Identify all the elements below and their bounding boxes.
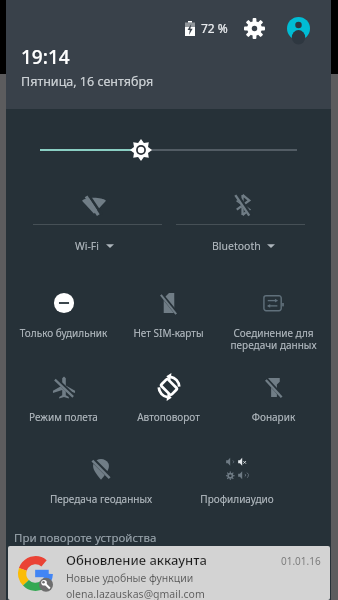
staticText: 72 % xyxy=(201,20,228,36)
button[interactable]: Передача геоданных xyxy=(33,456,169,514)
button[interactable]: Фонарик xyxy=(221,374,326,432)
staticText: Обновление аккаунта xyxy=(66,551,207,569)
button[interactable]: Профилиаудио xyxy=(169,456,305,514)
staticText: Новые удобные функции xyxy=(66,571,194,585)
staticText: 01.01.16 xyxy=(281,554,321,568)
staticText: Только будильник xyxy=(11,326,116,340)
staticText: Нет SIM-карты xyxy=(116,326,221,340)
staticText: Фонарик xyxy=(221,410,326,424)
button[interactable]: Обновление аккаунта xyxy=(8,546,330,600)
button[interactable]: Только будильник xyxy=(11,290,116,348)
button[interactable]: Нет SIM-карты xyxy=(116,290,221,348)
staticText: 19:14 xyxy=(21,44,70,70)
staticText: При повороте устройства xyxy=(14,530,157,546)
staticText: Передача геоданных xyxy=(33,492,169,506)
staticText: Wi-Fi xyxy=(75,239,100,253)
button[interactable]: User account xyxy=(286,16,310,40)
button[interactable]: Соединение для передачи данных xyxy=(221,290,326,348)
staticText: Пятница, 16 сентября xyxy=(21,73,154,90)
staticText: Bluetooth xyxy=(212,239,261,253)
staticText: Автоповорот xyxy=(116,410,221,424)
button[interactable]: Режим полета xyxy=(11,374,116,432)
staticText: Соединение для передачи данных xyxy=(221,326,326,352)
staticText: Режим полета xyxy=(11,410,116,424)
button[interactable]: Settings xyxy=(242,16,266,40)
button[interactable]: Wi-Fi xyxy=(6,182,168,272)
button[interactable]: Bluetooth xyxy=(168,182,331,272)
button[interactable]: Автоповорот xyxy=(116,374,221,432)
button[interactable]: Brightness xyxy=(6,138,331,162)
staticText: Профилиаудио xyxy=(169,492,305,506)
staticText: olena.lazauskas@gmail.com xyxy=(66,587,205,600)
